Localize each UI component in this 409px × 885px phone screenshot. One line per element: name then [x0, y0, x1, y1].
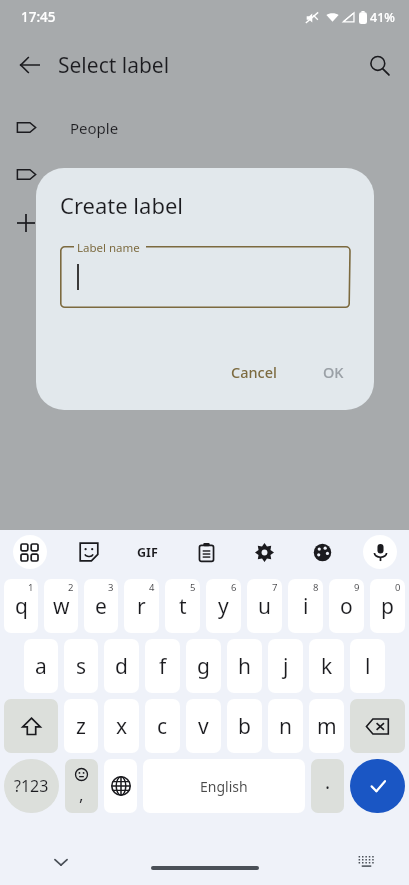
button[interactable]: v [186, 699, 221, 753]
staticText: k [321, 652, 333, 681]
button[interactable]: People [0, 104, 409, 151]
button[interactable]: b [227, 699, 262, 753]
staticText: s [76, 652, 87, 681]
staticText: t [179, 592, 187, 621]
staticText: f [159, 652, 167, 681]
button[interactable]: g [186, 639, 221, 693]
staticText: d [115, 652, 128, 681]
button[interactable]: s [64, 639, 98, 693]
button[interactable]: Back [8, 43, 52, 87]
button[interactable]: d [104, 639, 139, 693]
staticText: w [53, 592, 70, 621]
button[interactable]: t [165, 579, 200, 633]
button[interactable]: Themes [293, 530, 351, 574]
button[interactable]: Enter [350, 759, 405, 813]
button[interactable]: Stickers [59, 530, 118, 574]
button[interactable]: x [104, 699, 139, 753]
button[interactable]: Change language [104, 759, 137, 813]
staticText: 8 [313, 581, 319, 594]
staticText: z [76, 712, 86, 741]
button[interactable]: e [84, 579, 118, 633]
button[interactable]: Voice input [351, 530, 409, 574]
staticText: m [317, 712, 337, 741]
staticText: n [279, 712, 292, 741]
staticText: h [238, 652, 251, 681]
button[interactable]: Hide keyboard [44, 845, 78, 879]
staticText: English [200, 777, 248, 796]
button[interactable]: Search [357, 43, 401, 87]
staticText: u [258, 592, 271, 621]
button[interactable]: i [288, 579, 323, 633]
button[interactable]: a [24, 639, 58, 693]
staticText: ?123 [14, 775, 49, 797]
staticText: , [79, 783, 84, 806]
button[interactable]: f [145, 639, 180, 693]
button[interactable]: o [329, 579, 364, 633]
button[interactable]: m [309, 699, 344, 753]
staticText: . [325, 769, 331, 795]
staticText: x [116, 712, 128, 741]
staticText: a [35, 652, 47, 681]
staticText: 5 [190, 581, 196, 594]
staticText: GIF [137, 544, 158, 561]
staticText: 1 [28, 581, 34, 594]
staticText: Select label [58, 51, 170, 80]
staticText: Label name [77, 240, 140, 256]
staticText: v [198, 712, 209, 741]
button[interactable]: l [350, 639, 385, 693]
staticText: 2 [68, 581, 74, 594]
button[interactable]: Switch input method [349, 845, 383, 879]
button[interactable]: n [268, 699, 303, 753]
staticText: 9 [354, 581, 360, 594]
staticText: 0 [395, 581, 401, 594]
button[interactable]: q [4, 579, 38, 633]
staticText: People [70, 118, 119, 138]
button[interactable]: r [124, 579, 159, 633]
button[interactable] [0, 151, 409, 198]
staticText: g [197, 652, 210, 681]
button[interactable]: h [227, 639, 262, 693]
button[interactable]: w [44, 579, 78, 633]
staticText: i [303, 592, 309, 621]
staticText: 3 [108, 581, 114, 594]
button[interactable]: GIF [118, 530, 177, 574]
button[interactable]: k [309, 639, 344, 693]
button[interactable]: Cancel [219, 354, 289, 390]
staticText: 41% [370, 9, 395, 26]
button[interactable]: Period [311, 759, 344, 813]
button[interactable]: j [268, 639, 303, 693]
button[interactable]: p [370, 579, 405, 633]
button[interactable]: Settings [235, 530, 293, 574]
button[interactable]: z [64, 699, 98, 753]
button[interactable]: u [247, 579, 282, 633]
staticText: Cancel [231, 362, 277, 382]
staticText: q [15, 592, 28, 621]
staticText: o [340, 592, 353, 621]
button[interactable]: Shift [4, 699, 58, 753]
staticText: j [283, 652, 289, 681]
staticText: c [157, 712, 168, 741]
staticText: 17:45 [21, 8, 56, 26]
button[interactable]: c [145, 699, 180, 753]
staticText: 7 [272, 581, 278, 594]
staticText: Create label [60, 190, 184, 220]
button[interactable]: ?123 [4, 759, 59, 813]
staticText: 4 [149, 581, 155, 594]
staticText: OK [323, 362, 344, 382]
button[interactable]: Emoji and comma [65, 759, 98, 813]
button[interactable]: y [206, 579, 241, 633]
button[interactable] [0, 198, 409, 248]
staticText: r [137, 592, 146, 621]
button[interactable]: Backspace [350, 699, 405, 753]
button[interactable]: Toolbox [0, 530, 59, 574]
staticText: 6 [231, 581, 237, 594]
button[interactable]: Clipboard [177, 530, 235, 574]
staticText: p [381, 592, 394, 621]
staticText: b [238, 712, 251, 741]
button[interactable]: OK [311, 354, 356, 390]
staticText: e [95, 592, 107, 621]
staticText: y [218, 592, 229, 621]
button[interactable]: English [143, 759, 305, 813]
staticText: l [365, 652, 371, 681]
